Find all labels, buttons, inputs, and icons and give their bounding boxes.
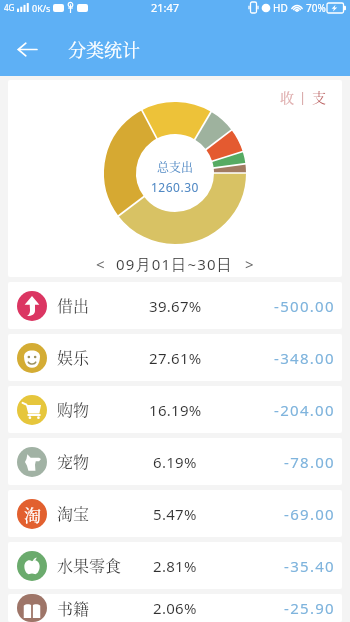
staticText: 16.19% — [149, 400, 202, 420]
staticText: 购物 — [57, 398, 90, 421]
staticText: -78.00 — [284, 452, 335, 472]
staticText: < — [96, 254, 105, 274]
staticText: 淘宝 — [57, 502, 90, 525]
staticText: 2.06% — [153, 598, 197, 618]
staticText: 水果零食 — [57, 554, 122, 577]
staticText: 09月01日~30日 — [116, 254, 234, 274]
button[interactable]: 宠物 — [8, 438, 342, 485]
staticText: 支 — [312, 87, 326, 107]
button[interactable]: 收 — [278, 85, 296, 109]
staticText: | — [299, 88, 307, 106]
staticText: 宠物 — [57, 450, 90, 473]
staticText: HD — [273, 1, 288, 15]
staticText: 借出 — [57, 294, 90, 317]
button[interactable]: Back — [9, 31, 45, 67]
staticText: > — [245, 254, 254, 274]
staticText: 分类统计 — [68, 36, 140, 62]
staticText: 总支出 — [157, 158, 194, 175]
staticText: -348.00 — [274, 348, 335, 368]
staticText: -35.40 — [284, 556, 335, 576]
staticText: 27.61% — [149, 348, 202, 368]
button[interactable]: 淘 — [8, 490, 342, 537]
staticText: 淘 — [24, 502, 41, 526]
staticText: 39.67% — [149, 296, 202, 316]
staticText: 1260.30 — [151, 179, 199, 195]
staticText: 娱乐 — [57, 346, 90, 369]
button[interactable]: 娱乐 — [8, 334, 342, 381]
button[interactable]: Next period — [238, 251, 261, 277]
staticText: -204.00 — [274, 400, 335, 420]
button[interactable]: 支 — [310, 85, 328, 109]
staticText: -25.90 — [284, 598, 335, 618]
staticText: 5.47% — [153, 504, 197, 524]
staticText: 0K/s — [32, 2, 51, 14]
staticText: 收 — [280, 87, 294, 107]
staticText: 6.19% — [153, 452, 197, 472]
button[interactable]: Previous period — [89, 251, 112, 277]
staticText: -69.00 — [284, 504, 335, 524]
button[interactable]: 书籍 — [8, 594, 342, 622]
staticText: 2.81% — [153, 556, 197, 576]
staticText: 21:47 — [151, 0, 180, 15]
staticText: 70% — [306, 1, 326, 15]
staticText: -500.00 — [274, 296, 335, 316]
button[interactable]: 水果零食 — [8, 542, 342, 589]
staticText: 4G — [4, 2, 15, 13]
staticText: 书籍 — [57, 597, 90, 620]
button[interactable]: 购物 — [8, 386, 342, 433]
button[interactable]: 借出 — [8, 282, 342, 329]
